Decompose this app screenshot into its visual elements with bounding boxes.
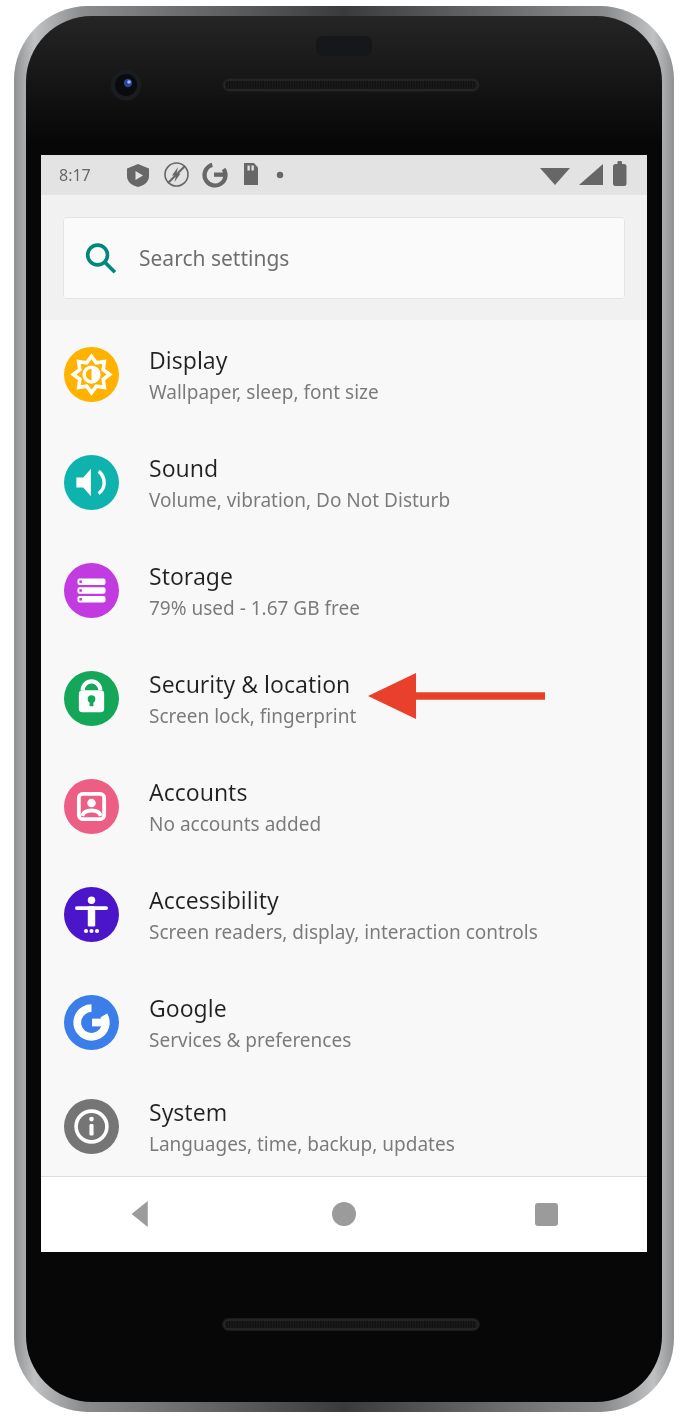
button[interactable]: Accessibility [41, 860, 647, 968]
button[interactable]: Storage [41, 536, 647, 644]
button[interactable]: Home [243, 1176, 445, 1252]
staticText: Search settings [139, 244, 290, 273]
button[interactable]: Google [41, 968, 647, 1076]
button[interactable]: Display [41, 320, 647, 428]
staticText: Services & preferences [149, 1027, 352, 1053]
staticText: Accounts [149, 776, 248, 807]
button[interactable]: Accounts [41, 752, 647, 860]
staticText: Wallpaper, sleep, font size [149, 379, 379, 405]
staticText: Security & location [149, 668, 351, 699]
staticText: No accounts added [149, 811, 322, 837]
button[interactable]: System [41, 1076, 647, 1176]
button[interactable]: Sound [41, 428, 647, 536]
button[interactable]: Back [41, 1176, 243, 1252]
staticText: Google [149, 992, 227, 1023]
staticText: Display [149, 344, 228, 375]
staticText: System [149, 1096, 228, 1127]
staticText: Languages, time, backup, updates [149, 1131, 455, 1157]
staticText: 8:17 [59, 164, 91, 186]
staticText: Screen lock, fingerprint [149, 703, 357, 729]
staticText: Accessibility [149, 884, 279, 915]
staticText: Volume, vibration, Do Not Disturb [149, 487, 451, 513]
button[interactable]: Recent apps [445, 1176, 647, 1252]
staticText: 79% used - 1.67 GB free [149, 595, 360, 621]
button[interactable]: Search settings [63, 217, 625, 299]
button[interactable]: Security & location [41, 644, 647, 752]
staticText: Screen readers, display, interaction con… [149, 919, 538, 945]
staticText: Storage [149, 560, 233, 591]
staticText: Sound [149, 452, 219, 483]
